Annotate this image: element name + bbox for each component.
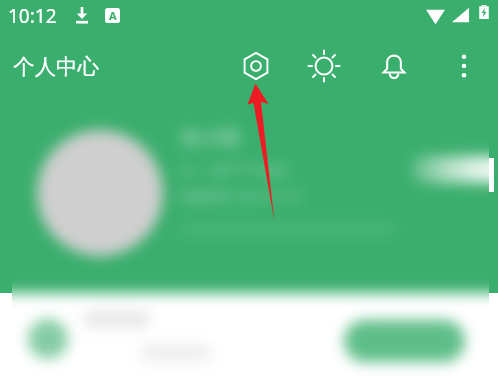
button[interactable]: Scan bbox=[230, 40, 282, 92]
staticText: A bbox=[109, 8, 117, 23]
button[interactable]: Notifications bbox=[368, 40, 420, 92]
staticText: 个人中心 bbox=[13, 53, 99, 80]
staticText: 10:12 bbox=[8, 3, 57, 29]
staticText: ID：188****6688 bbox=[180, 161, 288, 179]
button[interactable]: More options bbox=[438, 40, 490, 92]
button[interactable]: Brightness bbox=[298, 40, 350, 92]
staticText: 张小明 bbox=[180, 126, 240, 151]
staticText: 有效期至 2024-12-31 bbox=[180, 187, 304, 205]
